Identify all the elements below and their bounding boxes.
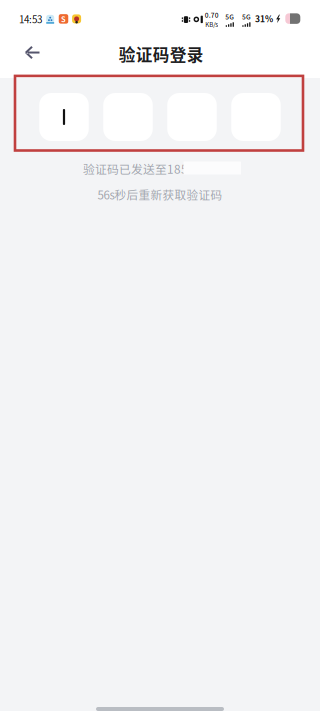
staticText: 14:53 <box>19 12 42 26</box>
staticText: 验证码登录 <box>119 42 204 66</box>
staticText: S <box>61 13 66 24</box>
staticText: 5G <box>242 12 251 21</box>
staticText: 验证码已发送至1851234567 <box>83 160 237 177</box>
button[interactable]: Verification code digit <box>39 93 89 141</box>
staticText: KB/s <box>205 20 218 29</box>
button[interactable]: Back <box>17 38 49 70</box>
staticText: 56s秒后重新获取验证码 <box>97 186 222 203</box>
staticText: 5G <box>225 12 234 21</box>
staticText: 0.70 <box>205 10 219 20</box>
staticText: 31% <box>255 12 273 25</box>
button[interactable]: 56s秒后重新获取验证码 <box>89 182 230 207</box>
